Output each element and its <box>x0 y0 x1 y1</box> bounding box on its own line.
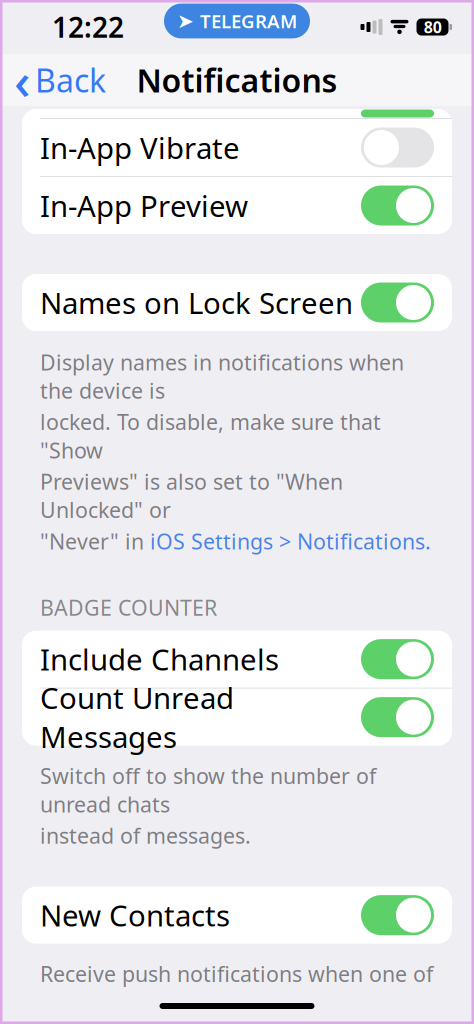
staticText: contacts becomes available on Telegram. <box>40 1019 348 1024</box>
staticText: 80 <box>424 16 442 38</box>
button[interactable]: ‹ <box>0 42 106 118</box>
staticText: In-App Vibrate <box>40 128 240 167</box>
button[interactable]: iOS Settings > Notifications. <box>150 527 431 555</box>
staticText: BADGE COUNTER <box>40 593 217 622</box>
staticText: Notifications <box>136 59 337 101</box>
button[interactable]: In-App Vibrate <box>22 119 452 176</box>
staticText: New Contacts <box>40 896 230 935</box>
staticText: locked. To disable, make sure that "Show <box>40 408 381 464</box>
staticText: Receive push notifications when one of y… <box>40 960 433 1016</box>
staticText: ‹ <box>14 46 31 114</box>
button[interactable]: Count Unread Messages <box>22 689 452 746</box>
staticText: Previews" is also set to "When Unlocked"… <box>40 467 343 524</box>
staticText: Switch off to show the number of unread … <box>40 762 376 818</box>
staticText: instead of messages. <box>40 821 251 850</box>
staticText: ➤ <box>177 10 194 32</box>
button[interactable]: In-App Preview <box>22 177 452 234</box>
button[interactable]: Names on Lock Screen <box>22 274 452 331</box>
staticText: "Never" in <box>40 527 150 555</box>
staticText: In-App Preview <box>40 186 248 225</box>
staticText: Names on Lock Screen <box>40 283 353 322</box>
staticText: Back <box>35 59 106 101</box>
staticText: Include Channels <box>40 640 279 679</box>
staticText: iOS Settings > Notifications. <box>150 527 431 555</box>
staticText: TELEGRAM <box>200 9 297 33</box>
button[interactable]: New Contacts <box>22 887 452 944</box>
staticText: Count Unread Messages <box>40 678 234 756</box>
staticText: Display names in notifications when the … <box>40 348 404 405</box>
staticText: 12:22 <box>52 8 124 46</box>
button[interactable]: Include Channels <box>22 631 452 688</box>
